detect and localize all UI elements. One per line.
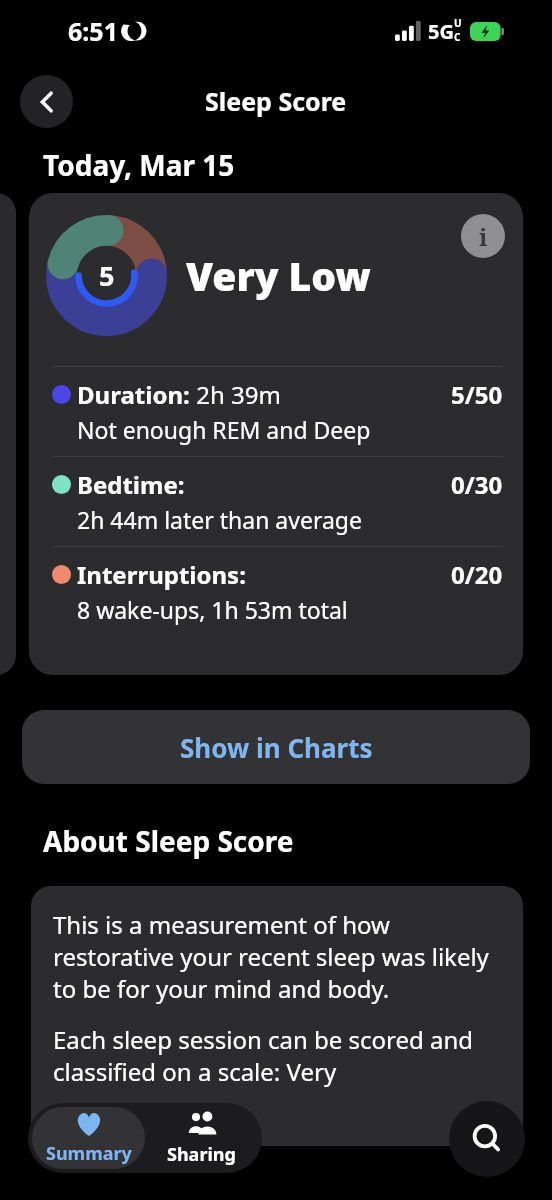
staticText: 5/50 (451, 378, 503, 411)
button[interactable]: Information (29, 193, 523, 675)
button[interactable]: Information (461, 214, 505, 258)
staticText: Sharing (167, 1142, 236, 1167)
button[interactable]: Summary (32, 1107, 145, 1169)
staticText: Very Low (186, 249, 371, 302)
staticText: Summary (46, 1141, 132, 1166)
staticText: This is a measurement of how restorative… (53, 908, 507, 1005)
button[interactable]: Sharing (145, 1107, 258, 1169)
staticText: 0/30 (451, 468, 503, 501)
staticText: Duration: (77, 378, 190, 411)
staticText: Bedtime: (77, 468, 185, 501)
button[interactable]: Show in Charts (22, 710, 530, 784)
staticText: 2h 39m (190, 378, 281, 411)
staticText: Each sleep session can be scored and cla… (53, 1023, 507, 1088)
staticText: Interruptions: (77, 558, 246, 591)
staticText: 0/20 (451, 558, 503, 591)
button[interactable]: Back (20, 75, 73, 128)
button[interactable]: Duration: (29, 367, 523, 456)
button[interactable]: Interruptions: (29, 547, 523, 636)
staticText: Today, Mar 15 (43, 146, 235, 184)
staticText: i (479, 220, 488, 253)
staticText: 8 wake-ups, 1h 53m total (77, 594, 348, 625)
staticText: 5G (428, 18, 454, 45)
staticText: C (454, 30, 461, 44)
staticText: 6:51 (68, 14, 118, 48)
staticText: Sleep Score (205, 84, 347, 118)
staticText: 2h 44m later than average (77, 504, 362, 535)
staticText: U (454, 16, 462, 30)
staticText: Show in Charts (180, 730, 373, 765)
button[interactable]: Bedtime: (29, 457, 523, 546)
staticText: About Sleep Score (43, 822, 294, 860)
button[interactable]: Search (449, 1101, 525, 1177)
staticText: Not enough REM and Deep (77, 414, 371, 445)
staticText: 5 (99, 257, 115, 294)
